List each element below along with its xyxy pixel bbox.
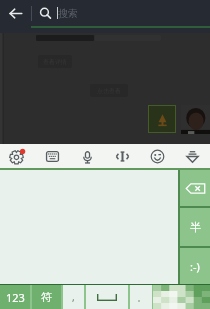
button[interactable]: 123 <box>0 285 30 309</box>
button[interactable]: :-) <box>180 248 210 284</box>
staticText: 123 <box>6 290 25 305</box>
button[interactable]: Voice input <box>70 144 105 168</box>
staticText: 。 <box>137 292 146 303</box>
staticText: , <box>72 290 75 304</box>
staticText: :-) <box>190 259 200 274</box>
button[interactable]: Settings <box>0 144 35 168</box>
button[interactable]: 符 <box>32 285 61 309</box>
staticText: 搜索 <box>58 7 78 20</box>
staticText: 符 <box>41 290 52 304</box>
button[interactable]: Move cursor <box>105 144 140 168</box>
button[interactable]: Sticker <box>148 105 176 133</box>
button[interactable]: 半 <box>180 208 210 246</box>
button[interactable]: Profile photo <box>181 105 210 134</box>
button[interactable]: Hide keyboard <box>175 144 210 168</box>
button[interactable]: , <box>63 285 84 309</box>
button[interactable]: Backspace <box>180 170 210 206</box>
button[interactable] <box>86 285 128 309</box>
button[interactable]: Enter <box>153 285 210 309</box>
button[interactable]: Back <box>0 0 31 26</box>
button[interactable]: Keyboard layout <box>35 144 70 168</box>
button[interactable]: Emoji <box>140 144 175 168</box>
staticText: 半 <box>190 220 201 234</box>
button[interactable]: 。 <box>130 285 152 309</box>
